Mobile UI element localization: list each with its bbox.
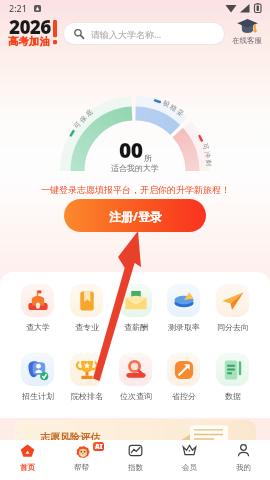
staticText: 可	[201, 142, 210, 152]
staticText: 适合我的大学	[111, 163, 159, 173]
staticText: AI	[95, 442, 103, 451]
button[interactable]: 会员	[162, 440, 216, 480]
staticText: 院校排名	[71, 391, 103, 401]
staticText: 查大学	[26, 322, 50, 332]
button[interactable]: 指数	[108, 440, 162, 480]
button[interactable]: AI	[54, 440, 108, 480]
button[interactable]: 我的	[216, 440, 270, 480]
button[interactable]: 测录取率	[160, 284, 207, 332]
staticText: 刺	[204, 159, 213, 167]
staticText: 会员	[182, 463, 197, 472]
staticText: 帮帮	[74, 463, 89, 472]
staticText: 省控分	[172, 391, 196, 401]
staticText: 我的	[236, 463, 251, 472]
staticText: 2:21	[9, 2, 27, 14]
staticText: 测录取率	[168, 322, 200, 332]
staticText: 请输入大学名称...	[91, 28, 162, 40]
staticText: 查薪酬	[124, 322, 148, 332]
staticText: 在线客服	[232, 36, 262, 45]
staticText: 数据	[225, 391, 241, 401]
button[interactable]: 注册/登录	[64, 199, 206, 232]
button[interactable]: 查薪酬	[112, 284, 159, 332]
staticText: 底	[84, 108, 95, 118]
staticText: 注册/登录	[109, 208, 162, 224]
staticText: 招生计划	[22, 391, 54, 401]
button[interactable]: 数据	[209, 353, 256, 401]
staticText: 位次查询	[120, 391, 152, 401]
staticText: 妥	[175, 108, 186, 118]
staticText: 指数	[128, 463, 143, 472]
button[interactable]: 志愿风险评估	[14, 420, 256, 460]
staticText: 查专业	[75, 322, 99, 332]
staticText: 所	[144, 153, 152, 163]
button[interactable]: 位次查询	[112, 353, 159, 401]
staticText: 稳	[168, 103, 178, 113]
button[interactable]: 院校排名	[63, 353, 110, 401]
staticText: 同分去向	[217, 322, 249, 332]
button[interactable]: 查专业	[63, 284, 110, 332]
button[interactable]: 招生计划	[14, 353, 61, 401]
staticText: 可	[72, 120, 83, 130]
button[interactable]: 同分去向	[209, 284, 256, 332]
staticText: 一键登录志愿填报平台，开启你的升学新旅程！	[41, 184, 230, 195]
staticText: 志愿风险评估	[40, 431, 100, 444]
button[interactable]: 省控分	[160, 353, 207, 401]
staticText: 2026	[9, 14, 51, 40]
staticText: 冲	[203, 151, 212, 159]
button[interactable]: 首页	[0, 440, 54, 480]
staticText: 高考加油	[8, 35, 50, 48]
staticText: 保	[78, 114, 89, 124]
staticText: 00	[119, 136, 143, 165]
staticText: 首页	[20, 463, 35, 472]
button[interactable]: 请输入大学名称...	[64, 23, 224, 44]
staticText: 较	[162, 99, 171, 109]
button[interactable]: 在线客服	[227, 18, 267, 45]
button[interactable]: 查大学	[14, 284, 61, 332]
